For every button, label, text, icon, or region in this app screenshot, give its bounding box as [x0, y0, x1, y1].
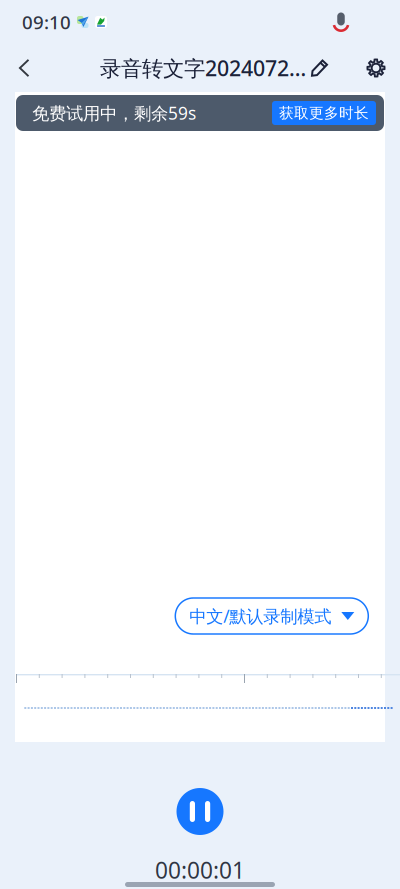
staticText: 中文/默认录制模式	[189, 604, 331, 627]
staticText: 录音转文字2024072…	[100, 54, 306, 82]
button[interactable]: 获取更多时长	[272, 101, 376, 125]
button[interactable]: Rename recording	[310, 51, 330, 85]
staticText: 获取更多时长	[279, 104, 369, 122]
button[interactable]: 中文/默认录制模式	[175, 598, 368, 634]
button[interactable]: Settings	[354, 44, 398, 92]
staticText: 免费试用中，剩余59s	[32, 101, 196, 124]
staticText: 09:10	[22, 10, 71, 34]
button[interactable]: Pause recording	[172, 788, 228, 835]
button[interactable]: Back	[2, 44, 46, 92]
staticText: 00:00:01	[155, 855, 245, 885]
